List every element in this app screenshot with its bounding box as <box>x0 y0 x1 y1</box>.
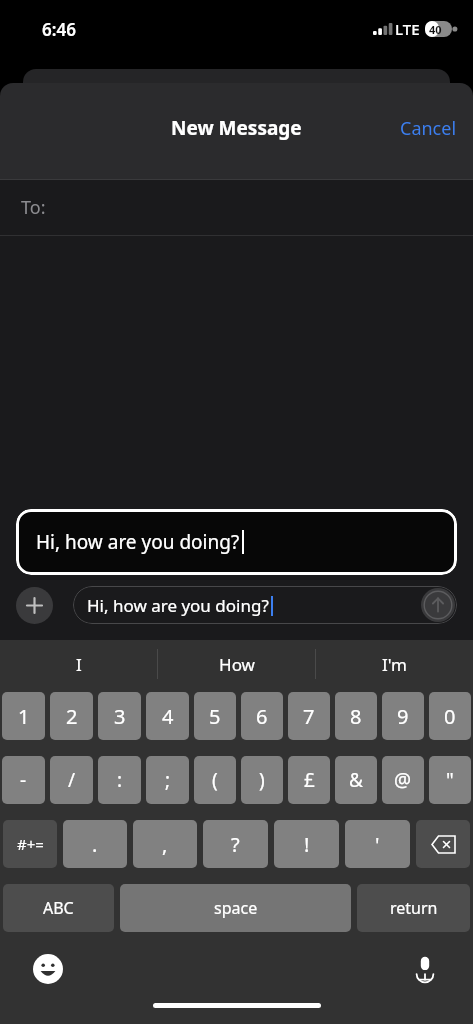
button[interactable]: Hi, how are you doing? <box>16 509 457 575</box>
button[interactable]: ! <box>274 820 339 868</box>
button[interactable]: - <box>2 756 45 804</box>
button[interactable]: return <box>357 884 470 932</box>
button[interactable]: I'm <box>316 640 473 688</box>
button[interactable]: Emoji <box>28 949 68 989</box>
button[interactable]: ABC <box>3 884 114 932</box>
staticText: 9 <box>397 703 409 730</box>
staticText: " <box>446 767 454 793</box>
staticText: ! <box>304 831 310 858</box>
staticText: How <box>219 653 255 676</box>
button[interactable]: @ <box>382 756 424 804</box>
staticText: LTE <box>395 19 420 39</box>
button[interactable]: 8 <box>335 692 377 740</box>
staticText: 4 <box>162 703 174 730</box>
button[interactable]: I <box>0 640 157 688</box>
staticText: 7 <box>303 703 315 730</box>
staticText: 40 <box>429 22 442 37</box>
staticText: space <box>214 897 258 919</box>
staticText: return <box>390 897 438 919</box>
staticText: - <box>20 767 27 793</box>
staticText: ( <box>212 767 218 793</box>
button[interactable]: 4 <box>146 692 189 740</box>
button[interactable]: 2 <box>50 692 93 740</box>
staticText: 6:46 <box>42 18 76 41</box>
button[interactable]: , <box>133 820 197 868</box>
button[interactable]: Dictate <box>405 949 445 989</box>
staticText: #+= <box>17 834 44 854</box>
staticText: 0 <box>444 703 456 730</box>
staticText: 1 <box>18 703 30 730</box>
staticText: New Message <box>171 115 302 141</box>
button[interactable]: space <box>120 884 351 932</box>
button[interactable]: & <box>335 756 377 804</box>
button[interactable]: : <box>98 756 141 804</box>
button[interactable]: / <box>50 756 93 804</box>
button[interactable]: Hi, how are you doing? <box>73 586 457 624</box>
button[interactable]: ) <box>241 756 283 804</box>
staticText: Cancel <box>400 116 457 141</box>
staticText: I'm <box>382 653 407 676</box>
staticText: ) <box>259 767 265 793</box>
staticText: @ <box>394 767 412 793</box>
staticText: 2 <box>66 703 78 730</box>
staticText: 5 <box>209 703 221 730</box>
staticText: £ <box>304 767 315 793</box>
button[interactable]: 7 <box>288 692 330 740</box>
staticText: 8 <box>350 703 362 730</box>
staticText: : <box>117 767 123 793</box>
button[interactable]: 9 <box>382 692 424 740</box>
button[interactable]: 3 <box>98 692 141 740</box>
staticText: Hi, how are you doing? <box>87 594 269 617</box>
button[interactable]: #+= <box>3 820 57 868</box>
button[interactable]: Send <box>421 588 455 622</box>
staticText: / <box>68 767 76 793</box>
staticText: 6 <box>256 703 268 730</box>
staticText: ' <box>375 831 380 858</box>
staticText: & <box>349 767 363 793</box>
staticText: . <box>92 831 98 858</box>
staticText: , <box>162 831 168 858</box>
button[interactable]: To: <box>0 180 473 235</box>
staticText: 3 <box>114 703 126 730</box>
staticText: ? <box>231 831 240 858</box>
staticText: ; <box>165 767 171 793</box>
button[interactable]: ( <box>194 756 236 804</box>
button[interactable]: £ <box>288 756 330 804</box>
button[interactable]: Delete <box>416 820 470 868</box>
staticText: To: <box>21 195 46 220</box>
button[interactable]: " <box>429 756 471 804</box>
button[interactable]: 1 <box>2 692 45 740</box>
button[interactable]: 0 <box>429 692 471 740</box>
button[interactable]: 5 <box>194 692 236 740</box>
staticText: ABC <box>43 897 74 919</box>
button[interactable]: ; <box>146 756 189 804</box>
button[interactable]: ' <box>345 820 410 868</box>
button[interactable]: Cancel <box>384 108 473 149</box>
staticText: Hi, how are you doing? <box>36 529 240 555</box>
button[interactable]: Add attachment <box>16 587 53 624</box>
button[interactable]: How <box>158 640 315 688</box>
button[interactable]: ? <box>203 820 268 868</box>
staticText: I <box>76 653 82 676</box>
button[interactable]: . <box>63 820 127 868</box>
button[interactable]: 6 <box>241 692 283 740</box>
